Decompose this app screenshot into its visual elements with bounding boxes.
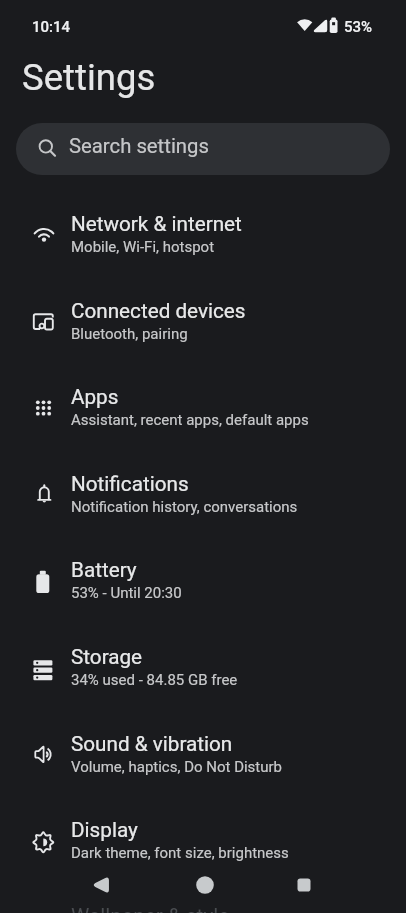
staticText: Volume, haptics, Do Not Disturb: [71, 758, 283, 776]
button[interactable]: Storage: [0, 623, 406, 710]
staticText: Battery: [71, 558, 137, 582]
staticText: Notification history, conversations: [71, 498, 298, 516]
staticText: 10:14: [32, 18, 71, 36]
staticText: Settings: [22, 56, 156, 99]
staticText: Dark theme, font size, brightness: [71, 844, 289, 862]
button[interactable]: Network & internet: [0, 190, 406, 277]
button[interactable]: Apps: [0, 363, 406, 450]
button[interactable]: [181, 861, 229, 909]
staticText: Wallpaper & style: [71, 904, 230, 913]
button[interactable]: Connected devices: [0, 277, 406, 364]
staticText: 34% used - 84.85 GB free: [71, 671, 238, 689]
staticText: Search settings: [69, 134, 209, 158]
staticText: Bluetooth, pairing: [71, 325, 188, 343]
button[interactable]: Display: [0, 796, 406, 883]
staticText: Apps: [71, 385, 119, 409]
staticText: Connected devices: [71, 299, 246, 323]
staticText: Display: [71, 818, 138, 842]
staticText: 53%: [344, 18, 373, 36]
button[interactable]: [280, 861, 328, 909]
staticText: Assistant, recent apps, default apps: [71, 411, 309, 429]
staticText: Network & internet: [71, 212, 242, 236]
staticText: Mobile, Wi-Fi, hotspot: [71, 238, 215, 256]
staticText: Notifications: [71, 472, 189, 496]
button[interactable]: Battery: [0, 536, 406, 623]
button[interactable]: [77, 861, 125, 909]
button[interactable]: Sound & vibration: [0, 710, 406, 797]
staticText: 53% - Until 20:30: [71, 584, 182, 602]
staticText: Sound & vibration: [71, 732, 233, 756]
button[interactable]: Notifications: [0, 450, 406, 537]
button[interactable]: Search settings: [16, 123, 390, 175]
staticText: Storage: [71, 645, 143, 669]
